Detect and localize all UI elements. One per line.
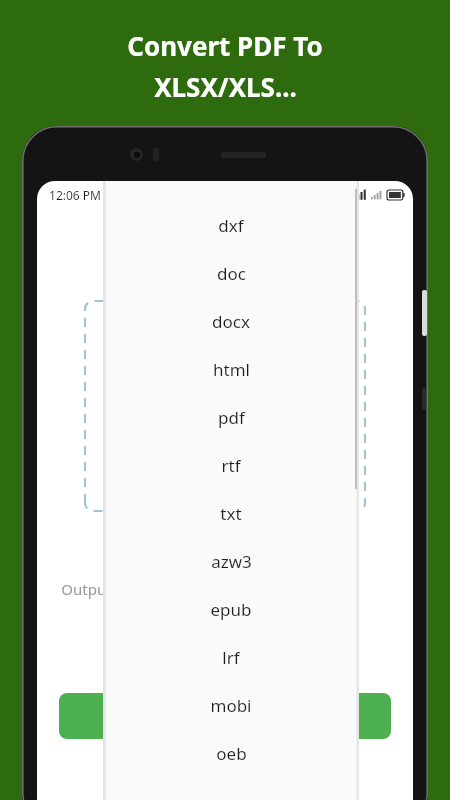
staticText: lrf (222, 646, 240, 669)
staticText: Convert PDF To (127, 28, 323, 63)
button[interactable]: doc (103, 249, 359, 297)
staticText: epub (210, 598, 252, 621)
staticText: pdf (218, 406, 245, 429)
button[interactable]: lrf (103, 633, 359, 681)
button[interactable]: dxf (103, 201, 359, 249)
staticText: XLSX/XLS... (154, 69, 297, 104)
staticText: docx (212, 310, 250, 333)
button[interactable]: pdf (103, 393, 359, 441)
button[interactable]: oeb (103, 729, 359, 777)
button[interactable]: mobi (103, 681, 359, 729)
staticText: 12:06 PM (49, 187, 101, 203)
staticText: oeb (216, 742, 247, 765)
button[interactable]: html (103, 345, 359, 393)
staticText: azw3 (211, 550, 252, 573)
staticText: rtf (221, 454, 241, 477)
staticText: Output (61, 579, 112, 599)
staticText: txt (220, 502, 242, 525)
button[interactable]: docx (103, 297, 359, 345)
button[interactable]: CONVERT (59, 693, 391, 739)
button[interactable]: azw3 (103, 537, 359, 585)
staticText: mobi (210, 694, 252, 717)
staticText: html (213, 358, 250, 381)
button[interactable]: rtf (103, 441, 359, 489)
button[interactable]: epub (103, 585, 359, 633)
staticText: doc (217, 262, 246, 285)
staticText: CONVERT (191, 706, 260, 726)
staticText: dxf (218, 214, 244, 237)
button[interactable]: txt (103, 489, 359, 537)
